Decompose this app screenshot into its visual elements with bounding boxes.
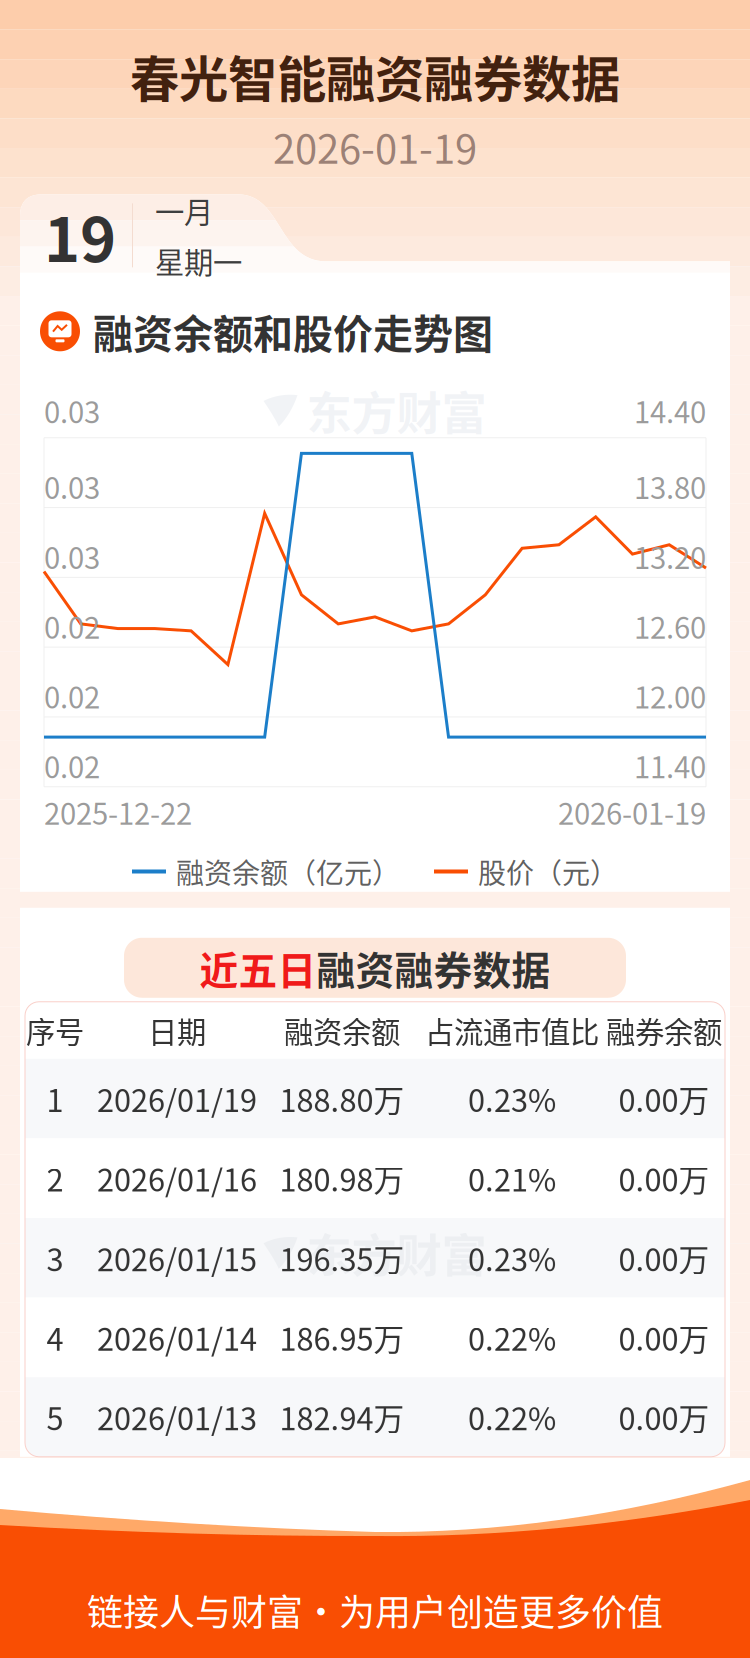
staticText: 0.03 <box>44 535 100 577</box>
staticText: 0.02 <box>44 674 100 717</box>
staticText: 占流通市值比 <box>425 1009 599 1051</box>
staticText: 融资余额 <box>284 1009 400 1051</box>
staticText: 11.40 <box>634 744 706 787</box>
staticText: 0.22% <box>468 1395 556 1439</box>
staticText: 12.60 <box>634 605 706 647</box>
staticText: 0.23% <box>468 1076 556 1121</box>
staticText: 0.03 <box>44 465 100 508</box>
staticText: 0.00万 <box>618 1156 709 1200</box>
staticText: 2026-01-19 <box>558 791 706 833</box>
staticText: 近五日 <box>199 940 316 996</box>
staticText: 0.02 <box>44 744 100 787</box>
staticText: 2026/01/19 <box>97 1076 257 1121</box>
staticText: 春光智能融资融券数据 <box>130 40 620 111</box>
staticText: 19 <box>44 191 116 280</box>
staticText: 融资融券数据 <box>316 940 550 996</box>
staticText: 序号 <box>26 1009 84 1051</box>
staticText: 0.00万 <box>618 1236 709 1280</box>
staticText: 0.00万 <box>618 1315 709 1360</box>
staticText: 0.03 <box>44 389 100 432</box>
staticText: 0.00万 <box>618 1395 709 1439</box>
staticText: 2 <box>46 1156 63 1200</box>
staticText: 196.35万 <box>279 1236 404 1280</box>
staticText: 186.95万 <box>279 1315 404 1360</box>
staticText: 182.94万 <box>279 1395 404 1439</box>
staticText: 东方财富 <box>306 378 486 443</box>
staticText: 3 <box>46 1236 63 1280</box>
staticText: 日期 <box>148 1009 206 1051</box>
staticText: 2026/01/13 <box>97 1395 257 1439</box>
staticText: 融券余额 <box>606 1009 722 1051</box>
staticText: 2026/01/15 <box>97 1236 257 1280</box>
staticText: 180.98万 <box>279 1156 404 1200</box>
staticText: 链接人与财富·为用户创造更多价值 <box>87 1584 663 1636</box>
staticText: 一月 <box>155 189 213 231</box>
staticText: 4 <box>46 1315 63 1360</box>
staticText: 13.80 <box>634 465 706 508</box>
staticText: 14.40 <box>634 389 706 432</box>
staticText: 星期一 <box>155 239 242 282</box>
staticText: 0.22% <box>468 1315 556 1360</box>
staticText: 188.80万 <box>279 1076 404 1121</box>
staticText: 0.21% <box>468 1156 556 1200</box>
staticText: 0.02 <box>44 605 100 647</box>
staticText: 2026-01-19 <box>273 117 477 175</box>
staticText: 0.23% <box>468 1236 556 1280</box>
staticText: 东方财富 <box>306 1220 486 1286</box>
staticText: 1 <box>46 1076 63 1121</box>
staticText: 2025-12-22 <box>44 791 192 833</box>
staticText: 13.20 <box>634 535 706 577</box>
staticText: 融资余额和股价走势图 <box>93 302 493 360</box>
staticText: 5 <box>46 1395 63 1439</box>
staticText: 股价（元） <box>478 851 618 892</box>
staticText: 12.00 <box>634 674 706 717</box>
staticText: 0.00万 <box>618 1076 709 1121</box>
staticText: 2026/01/16 <box>97 1156 257 1200</box>
staticText: 融资余额（亿元） <box>176 851 400 892</box>
staticText: 2026/01/14 <box>97 1315 257 1360</box>
